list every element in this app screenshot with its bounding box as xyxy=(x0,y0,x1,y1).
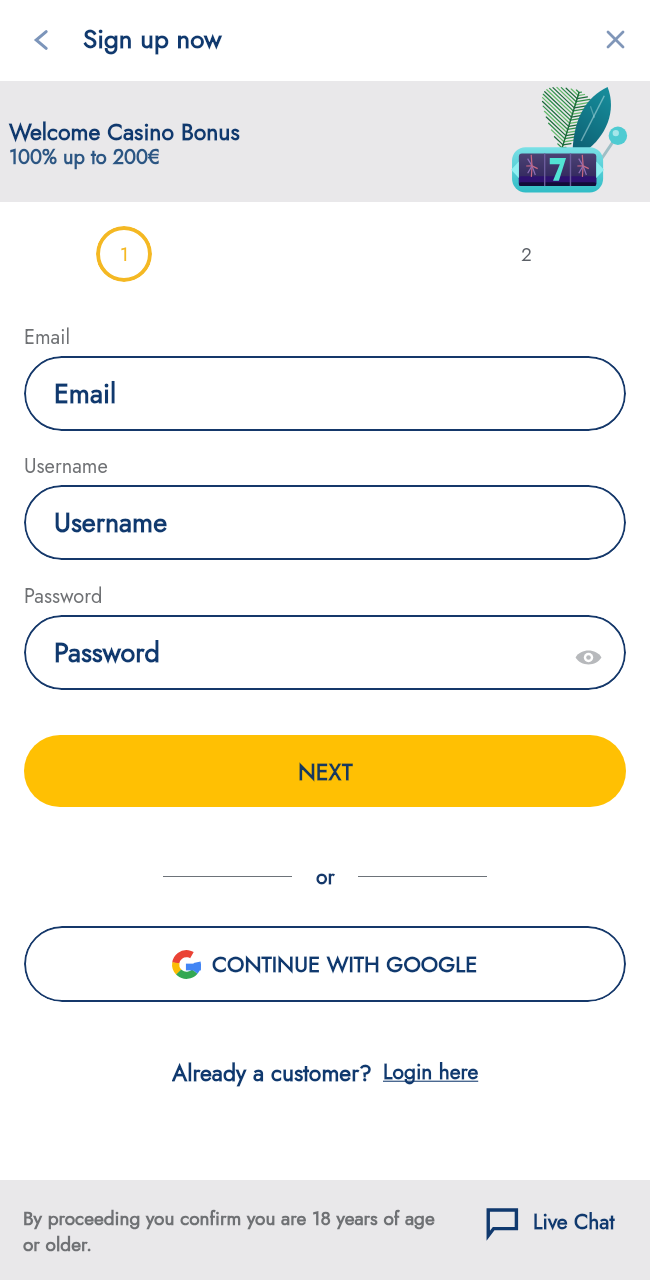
staticText: Email xyxy=(24,323,71,352)
staticText: 1 xyxy=(120,241,129,268)
button[interactable]: Live Chat xyxy=(486,1207,615,1237)
staticText: Password xyxy=(54,633,160,672)
staticText: Live Chat xyxy=(533,1207,615,1237)
button[interactable]: Close xyxy=(592,16,638,62)
staticText: 2 xyxy=(521,241,532,268)
button[interactable]: CONTINUE WITH GOOGLE xyxy=(24,926,626,1002)
button[interactable]: 1 xyxy=(96,226,152,282)
staticText: By proceeding you confirm you are 18 yea… xyxy=(23,1205,455,1258)
staticText: CONTINUE WITH GOOGLE xyxy=(212,948,478,980)
button[interactable]: Username xyxy=(24,485,626,560)
staticText: Username xyxy=(54,503,168,542)
button[interactable]: NEXT xyxy=(24,735,626,807)
staticText: Already a customer? xyxy=(172,1056,372,1088)
staticText: 100% up to 200€ xyxy=(9,143,160,172)
staticText: Welcome Casino Bonus xyxy=(9,115,240,148)
button[interactable]: Show password xyxy=(567,636,609,678)
staticText: NEXT xyxy=(298,755,353,788)
button[interactable]: Email xyxy=(24,356,626,431)
staticText: Login here xyxy=(383,1057,479,1087)
staticText: Sign up now xyxy=(83,20,222,58)
staticText: or xyxy=(316,862,335,892)
staticText: Username xyxy=(24,452,108,481)
button[interactable]: Password xyxy=(24,615,626,690)
button[interactable]: Already a customer? xyxy=(0,1056,650,1088)
staticText: Email xyxy=(54,374,117,413)
staticText: Password xyxy=(24,582,103,611)
button[interactable]: 2 xyxy=(498,226,554,282)
button[interactable]: Back xyxy=(18,17,64,63)
